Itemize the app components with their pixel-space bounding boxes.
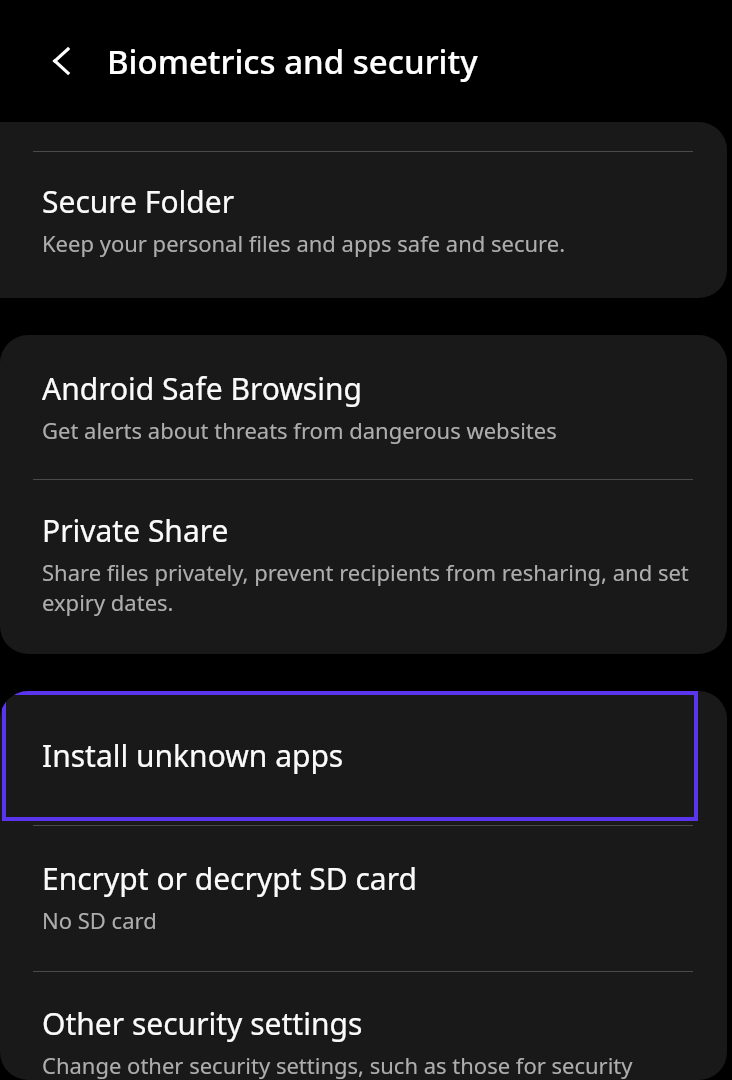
staticText: Share files privately, prevent recipient… (42, 557, 697, 618)
button[interactable]: Install unknown apps (3, 691, 698, 821)
staticText: Keep your personal files and apps safe a… (42, 228, 566, 258)
button[interactable]: Private Share (0, 480, 727, 654)
staticText: Install unknown apps (42, 735, 344, 776)
staticText: Private Share (42, 510, 229, 551)
staticText: Other security settings (42, 1003, 363, 1044)
button[interactable]: Secure Folder (0, 152, 727, 298)
staticText: Android Safe Browsing (42, 368, 362, 409)
staticText: Get alerts about threats from dangerous … (42, 415, 557, 445)
button[interactable]: Encrypt or decrypt SD card (0, 826, 727, 971)
staticText: Change other security settings, such as … (42, 1050, 697, 1080)
staticText: Biometrics and security (107, 39, 478, 84)
button[interactable]: Android Safe Browsing (0, 335, 727, 479)
staticText: Encrypt or decrypt SD card (42, 858, 417, 899)
staticText: No SD card (42, 905, 157, 935)
button[interactable]: Other security settings (0, 972, 727, 1080)
staticText: Secure Folder (42, 181, 235, 222)
button[interactable]: Navigate up (29, 28, 95, 94)
